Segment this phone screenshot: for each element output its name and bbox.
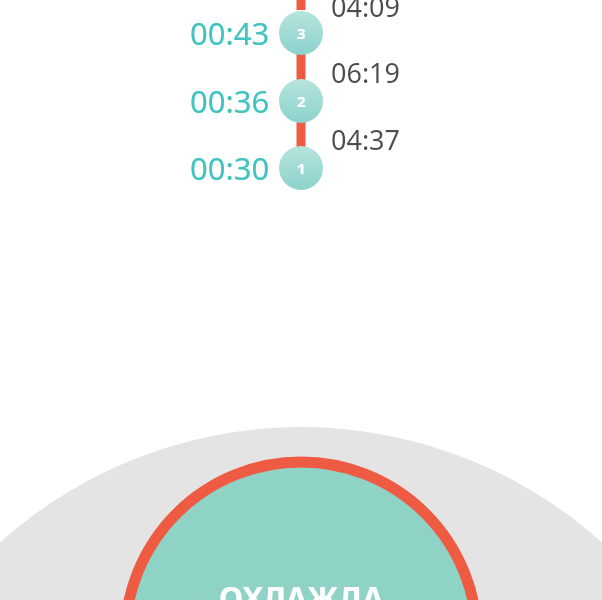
button[interactable]: Интервал 1	[279, 146, 323, 190]
button[interactable]: 00:43	[170, 12, 270, 54]
button[interactable]: 06:19	[331, 54, 431, 90]
staticText: 00:30	[190, 147, 270, 189]
staticText: 00:43	[190, 12, 270, 54]
staticText: 04:09	[331, 0, 401, 24]
button[interactable]: 04:09	[331, 0, 431, 24]
staticText: 2	[297, 91, 306, 111]
button[interactable]: Интервал 2	[279, 79, 323, 123]
button[interactable]: 00:30	[170, 147, 270, 189]
staticText: 06:19	[331, 54, 401, 90]
staticText: 1	[297, 158, 306, 178]
button[interactable]: Интервал 3	[279, 11, 323, 55]
staticText: 04:37	[331, 121, 401, 157]
staticText: 3	[297, 23, 306, 43]
button[interactable]: Охлаждение	[125, 462, 477, 600]
staticText: ОХЛАЖДА	[219, 576, 384, 600]
button[interactable]: 04:37	[331, 121, 431, 157]
button[interactable]: 00:36	[170, 80, 270, 122]
staticText: 00:36	[190, 80, 270, 122]
